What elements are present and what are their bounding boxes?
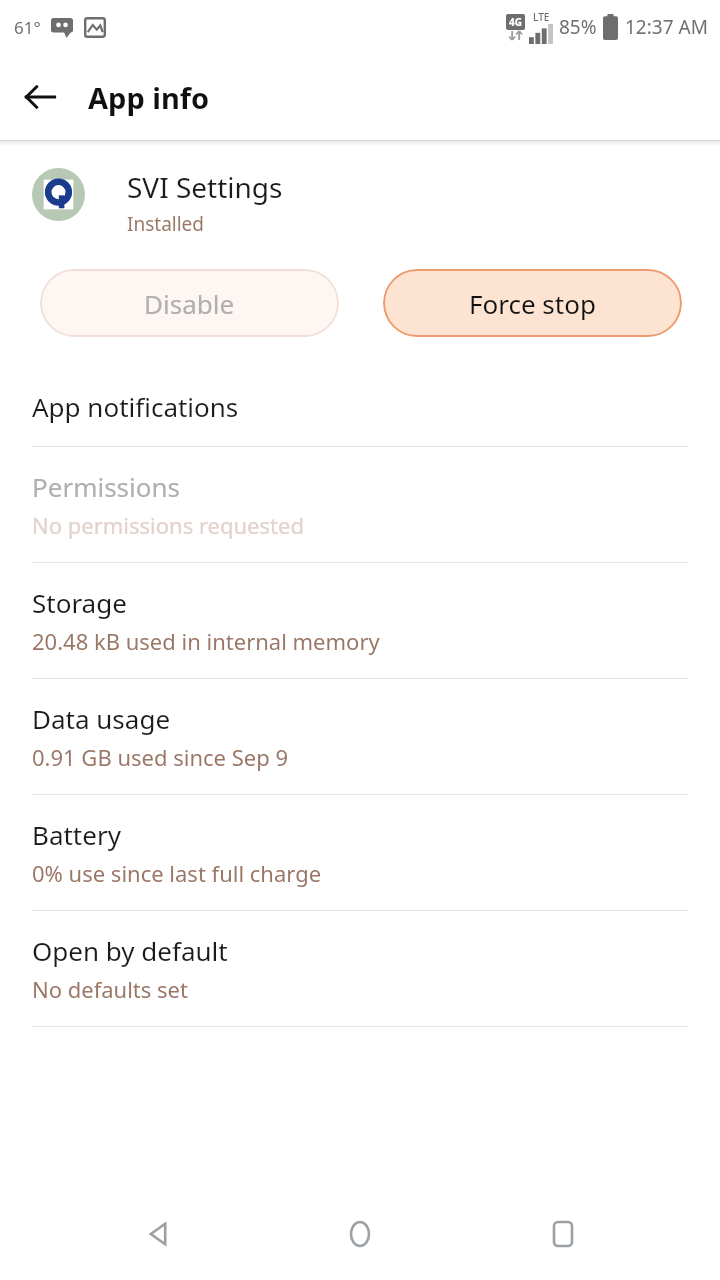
button[interactable]: Data usage xyxy=(0,679,720,794)
button[interactable]: Home xyxy=(315,1189,405,1279)
staticText: SVI Settings xyxy=(127,168,283,206)
staticText: 12:37 AM xyxy=(625,14,708,40)
button[interactable]: Back xyxy=(8,65,72,129)
staticText: Installed xyxy=(127,211,205,237)
staticText: 61° xyxy=(14,16,41,39)
button[interactable]: Battery xyxy=(0,795,720,910)
button[interactable]: Force stop xyxy=(383,269,682,337)
button[interactable]: Back xyxy=(113,1189,203,1279)
staticText: 0% use since last full charge xyxy=(32,858,322,888)
staticText: No permissions requested xyxy=(32,510,304,540)
staticText: App notifications xyxy=(32,389,239,424)
staticText: App info xyxy=(88,78,210,117)
staticText: Open by default xyxy=(32,933,228,968)
staticText: Disable xyxy=(144,286,235,321)
staticText: LTE xyxy=(533,10,550,24)
staticText: No defaults set xyxy=(32,974,188,1004)
staticText: Data usage xyxy=(32,701,171,736)
staticText: 4G xyxy=(509,15,522,29)
button[interactable]: Open by default xyxy=(0,911,720,1026)
button[interactable]: Disable xyxy=(40,269,339,337)
button[interactable]: Permissions xyxy=(0,447,720,562)
staticText: Force stop xyxy=(469,286,596,321)
button[interactable]: Recent apps xyxy=(518,1189,608,1279)
staticText: 20.48 kB used in internal memory xyxy=(32,626,380,656)
staticText: Permissions xyxy=(32,469,181,504)
button[interactable]: Storage xyxy=(0,563,720,678)
staticText: Storage xyxy=(32,585,127,620)
button[interactable]: App notifications xyxy=(0,367,720,446)
staticText: 85% xyxy=(559,14,597,40)
staticText: Battery xyxy=(32,817,121,852)
staticText: 0.91 GB used since Sep 9 xyxy=(32,742,289,772)
